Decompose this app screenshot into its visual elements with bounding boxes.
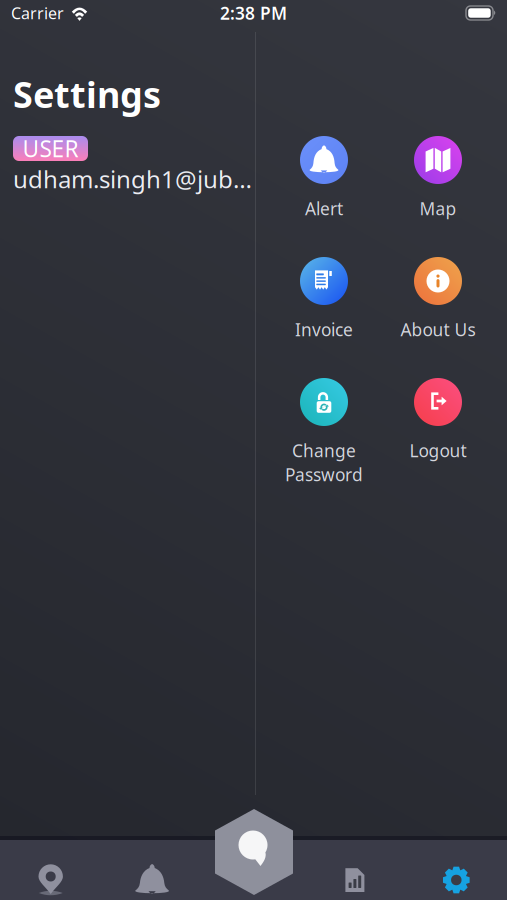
staticText: Alert [305, 197, 343, 220]
staticText: USER [22, 133, 78, 163]
button[interactable]: Settings [406, 858, 507, 900]
button[interactable]: About Us [381, 257, 495, 378]
button[interactable]: Location [0, 858, 101, 900]
staticText: Password [285, 463, 363, 486]
staticText: Logout [409, 439, 466, 462]
button[interactable]: Logout [381, 378, 495, 499]
staticText: Invoice [295, 318, 353, 341]
button[interactable]: Change Password [267, 378, 381, 499]
staticText: About Us [400, 318, 475, 341]
staticText: udham.singh1@jubl.... [13, 163, 253, 195]
staticText: Change [292, 439, 356, 462]
button[interactable]: Notifications [101, 858, 203, 900]
button[interactable]: Chat [215, 809, 293, 895]
staticText: Settings [13, 70, 161, 118]
button[interactable]: Reports [304, 858, 406, 900]
button[interactable]: Map [381, 136, 495, 257]
staticText: Map [419, 197, 456, 220]
staticText: Carrier [11, 2, 64, 24]
staticText: 2:38 PM [220, 1, 287, 24]
button[interactable]: Invoice [267, 257, 381, 378]
button[interactable]: Alert [267, 136, 381, 257]
